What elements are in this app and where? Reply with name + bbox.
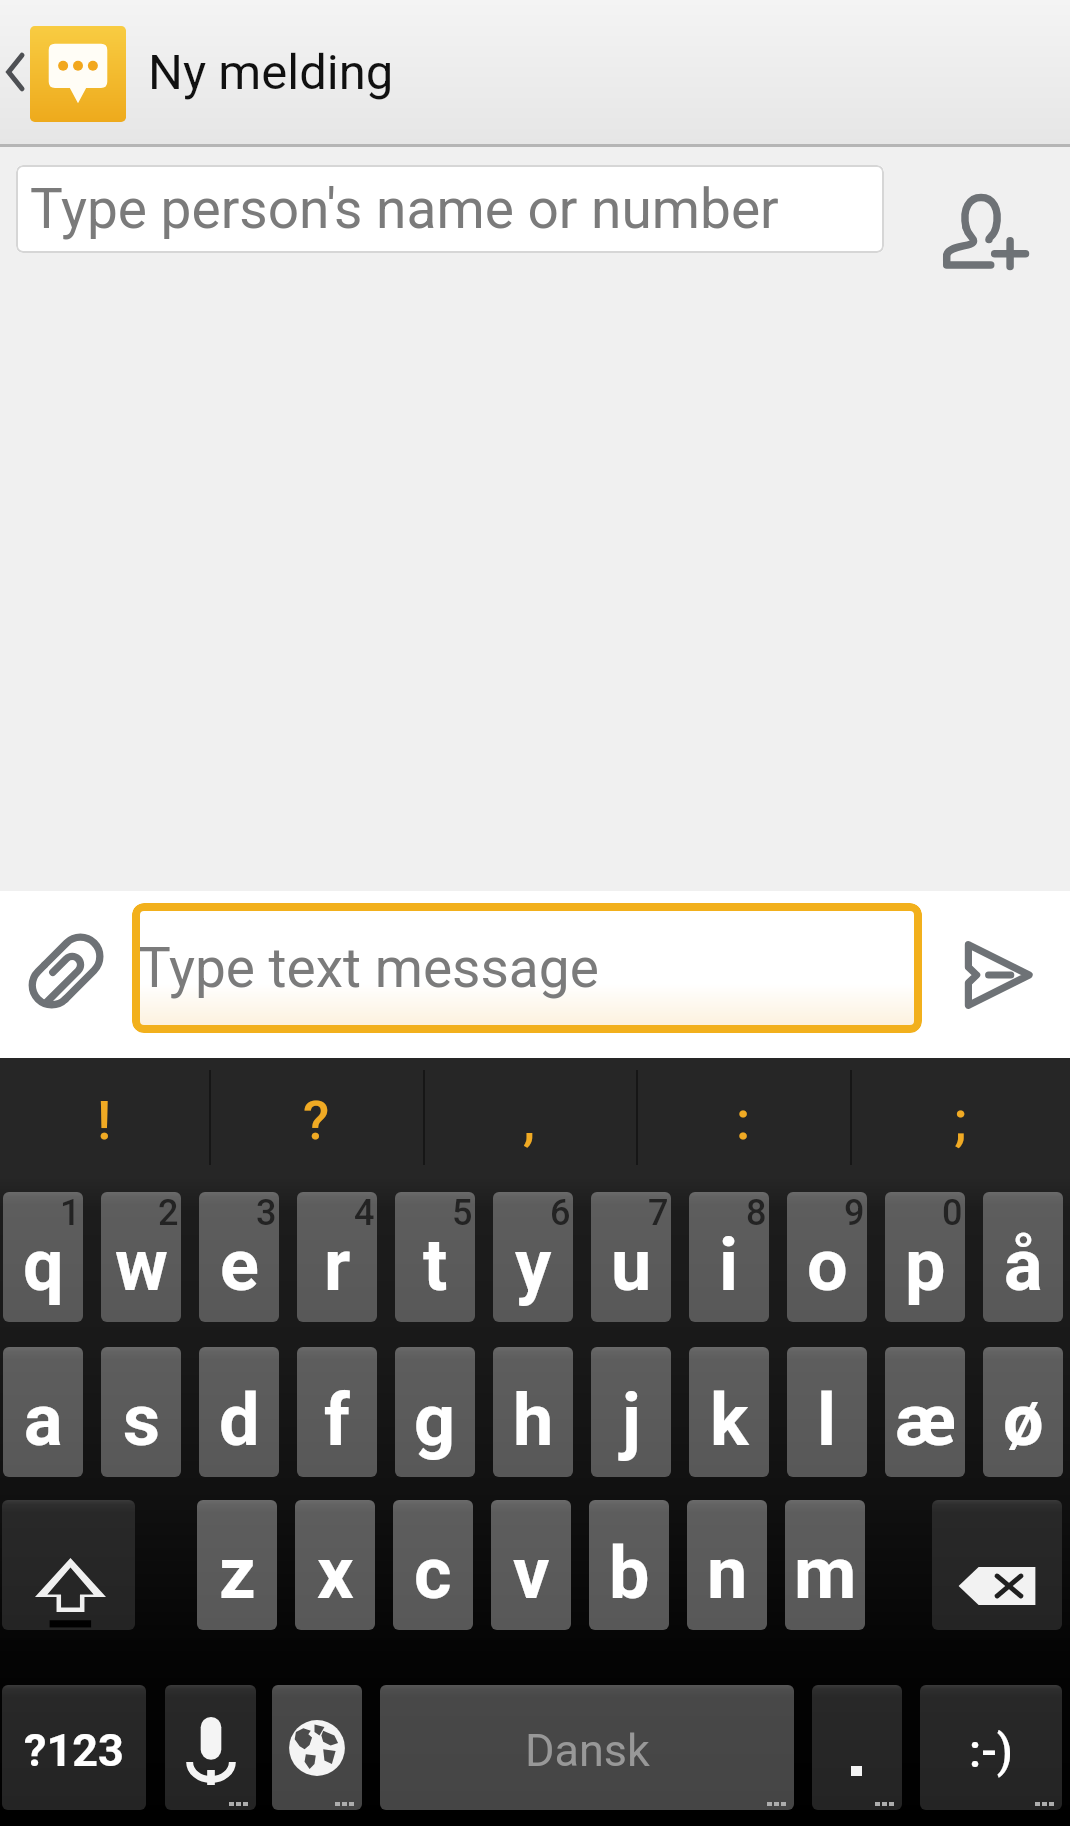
staticText: 6 xyxy=(550,1192,571,1234)
staticText: l xyxy=(817,1378,837,1462)
staticText: ø xyxy=(1003,1378,1044,1462)
staticText: w xyxy=(115,1223,168,1307)
button[interactable]: f xyxy=(297,1347,377,1477)
staticText: t xyxy=(423,1223,448,1307)
button[interactable]: u xyxy=(591,1192,671,1322)
button[interactable]: g xyxy=(395,1347,475,1477)
button[interactable]: Space xyxy=(380,1685,794,1810)
button[interactable]: s xyxy=(101,1347,181,1477)
button[interactable]: Type person's name or number xyxy=(16,165,884,253)
button[interactable]: o xyxy=(787,1192,867,1322)
staticText: p xyxy=(905,1223,946,1307)
staticText: 5 xyxy=(452,1192,473,1234)
staticText: f xyxy=(324,1378,350,1462)
staticText: 4 xyxy=(354,1192,375,1234)
staticText: Type text message xyxy=(138,936,599,1000)
staticText: s xyxy=(123,1378,160,1462)
staticText: ; xyxy=(954,1089,967,1152)
staticText: d xyxy=(219,1378,260,1462)
staticText: : xyxy=(736,1089,751,1152)
button[interactable]: å xyxy=(983,1192,1063,1322)
staticText: 2 xyxy=(158,1192,179,1234)
staticText: æ xyxy=(895,1378,956,1462)
button[interactable]: r xyxy=(297,1192,377,1322)
button[interactable]: Voice input xyxy=(165,1685,256,1810)
staticText: u xyxy=(611,1223,652,1307)
button[interactable]: l xyxy=(787,1347,867,1477)
button[interactable]: Type text message xyxy=(132,903,922,1033)
staticText: v xyxy=(513,1531,550,1615)
staticText: n xyxy=(707,1531,748,1615)
staticText: y xyxy=(515,1223,552,1307)
button[interactable]: Attach xyxy=(0,891,132,1058)
staticText: h xyxy=(513,1378,554,1462)
staticText: å xyxy=(1004,1223,1043,1307)
staticText: ! xyxy=(97,1089,112,1152)
button[interactable]: Shift xyxy=(2,1500,135,1630)
button[interactable]: Period xyxy=(812,1685,902,1810)
button[interactable]: n xyxy=(687,1500,767,1630)
staticText: q xyxy=(23,1223,64,1307)
button[interactable]: b xyxy=(589,1500,669,1630)
staticText: a xyxy=(24,1378,63,1462)
button[interactable]: Add recipient xyxy=(900,144,1070,274)
button[interactable]: p xyxy=(885,1192,965,1322)
staticText: k xyxy=(710,1378,749,1462)
staticText: o xyxy=(807,1223,848,1307)
button[interactable]: q xyxy=(3,1192,83,1322)
button[interactable]: ? xyxy=(209,1058,423,1178)
button[interactable]: y xyxy=(493,1192,573,1322)
staticText: 1 xyxy=(60,1192,81,1234)
button[interactable]: Back xyxy=(0,0,30,144)
button[interactable]: æ xyxy=(885,1347,965,1477)
button[interactable]: :-) xyxy=(920,1685,1062,1810)
button[interactable]: v xyxy=(491,1500,571,1630)
button[interactable]: Change language xyxy=(272,1685,362,1810)
button[interactable]: z xyxy=(197,1500,277,1630)
staticText: 0 xyxy=(942,1192,963,1234)
staticText: c xyxy=(414,1531,452,1615)
staticText: r xyxy=(324,1223,351,1307)
button[interactable]: m xyxy=(785,1500,865,1630)
button[interactable]: w xyxy=(101,1192,181,1322)
button[interactable]: j xyxy=(591,1347,671,1477)
button[interactable]: t xyxy=(395,1192,475,1322)
button[interactable]: : xyxy=(636,1058,850,1178)
button[interactable]: Backspace xyxy=(932,1500,1062,1630)
button[interactable]: , xyxy=(423,1058,636,1178)
staticText: e xyxy=(220,1223,259,1307)
button[interactable]: c xyxy=(393,1500,473,1630)
staticText: 7 xyxy=(648,1192,669,1234)
button[interactable]: a xyxy=(3,1347,83,1477)
staticText: Dansk xyxy=(525,1724,650,1777)
staticText: :-) xyxy=(969,1724,1013,1778)
button[interactable]: x xyxy=(295,1500,375,1630)
staticText: i xyxy=(719,1223,739,1307)
staticText: j xyxy=(622,1378,641,1462)
staticText: b xyxy=(609,1531,650,1615)
staticText: 8 xyxy=(746,1192,767,1234)
staticText: 3 xyxy=(256,1192,277,1234)
button[interactable]: ; xyxy=(850,1058,1070,1178)
staticText: z xyxy=(219,1531,256,1615)
button[interactable]: Send xyxy=(922,891,1070,1058)
staticText: 9 xyxy=(844,1192,865,1234)
button[interactable]: i xyxy=(689,1192,769,1322)
staticText: Type person's name or number xyxy=(30,177,779,241)
staticText: ?123 xyxy=(24,1724,124,1777)
button[interactable]: d xyxy=(199,1347,279,1477)
button[interactable]: k xyxy=(689,1347,769,1477)
button[interactable]: h xyxy=(493,1347,573,1477)
staticText: g xyxy=(414,1378,456,1462)
staticText: m xyxy=(794,1531,857,1615)
button[interactable]: ! xyxy=(0,1058,209,1178)
staticText: ? xyxy=(303,1089,330,1152)
staticText: Ny melding xyxy=(148,44,394,101)
button[interactable]: ø xyxy=(983,1347,1063,1477)
button[interactable]: e xyxy=(199,1192,279,1322)
staticText: , xyxy=(523,1089,536,1152)
button[interactable]: ?123 xyxy=(2,1685,146,1810)
staticText: x xyxy=(317,1531,354,1615)
